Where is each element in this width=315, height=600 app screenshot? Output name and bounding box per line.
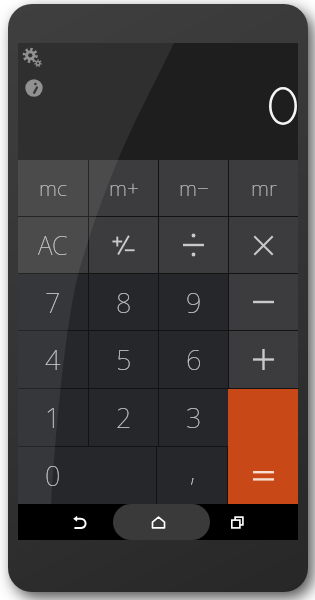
staticText: mr (251, 174, 277, 203)
button[interactable]: 9 (159, 274, 228, 330)
button[interactable]: Settings (19, 44, 49, 74)
button[interactable]: 2 (89, 389, 158, 446)
staticText: 9 (186, 284, 202, 321)
staticText: 1 (45, 399, 61, 436)
button[interactable]: 4 (18, 331, 88, 388)
button[interactable] (229, 217, 298, 273)
button[interactable]: 8 (89, 274, 158, 330)
button[interactable]: mr (229, 160, 298, 216)
button[interactable] (159, 217, 228, 273)
staticText: 3 (186, 399, 202, 436)
button[interactable] (229, 331, 298, 388)
staticText: 5 (116, 341, 132, 378)
button[interactable]: 3 (159, 389, 228, 446)
button[interactable] (228, 447, 298, 504)
button[interactable]: 7 (18, 274, 88, 330)
button[interactable]: 6 (159, 331, 228, 388)
staticText: 4 (45, 341, 61, 378)
staticText: , (190, 452, 195, 489)
staticText: AC (38, 228, 68, 262)
button[interactable]: 0 (18, 447, 156, 504)
staticText: 6 (186, 341, 202, 378)
button[interactable] (229, 274, 298, 330)
button[interactable]: mc (18, 160, 88, 216)
button[interactable] (89, 217, 158, 273)
staticText: 0 (45, 457, 61, 494)
staticText: 2 (116, 399, 132, 436)
button[interactable]: 1 (18, 389, 88, 446)
button[interactable]: Equals (228, 389, 298, 504)
staticText: mc (39, 174, 67, 203)
button[interactable]: Recents (198, 504, 277, 540)
staticText: 7 (45, 284, 61, 321)
button[interactable]: AC (18, 217, 88, 273)
button[interactable]: Home (119, 504, 198, 540)
staticText: m+ (109, 174, 139, 203)
button[interactable]: m− (159, 160, 228, 216)
staticText: m− (179, 174, 209, 203)
staticText: 8 (116, 284, 132, 321)
button[interactable]: Back (39, 504, 119, 540)
button[interactable]: , (157, 447, 227, 504)
button[interactable]: m+ (89, 160, 158, 216)
button[interactable]: 5 (89, 331, 158, 388)
button[interactable]: Info (19, 73, 49, 103)
